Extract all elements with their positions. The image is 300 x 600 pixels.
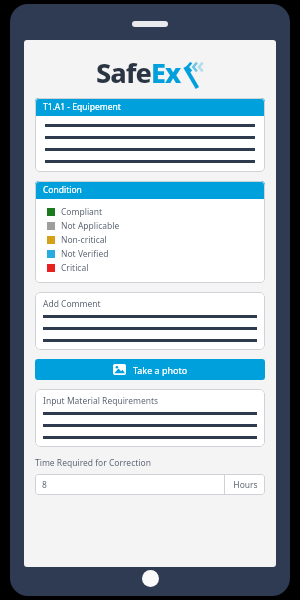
button[interactable]: Non-critical (47, 233, 257, 247)
staticText: Hours (233, 479, 258, 491)
button[interactable]: Home (142, 570, 159, 587)
button[interactable]: Compliant (47, 205, 257, 219)
staticText: Ex (151, 54, 181, 91)
button[interactable]: Not Verified (47, 247, 257, 261)
button[interactable]: Input Material Requirements (35, 389, 265, 447)
staticText: Not Verified (61, 248, 109, 260)
staticText: Time Required for Correction (35, 457, 151, 469)
staticText: 8 (42, 479, 47, 491)
staticText: Compliant (61, 206, 103, 218)
staticText: Not Applicable (61, 220, 120, 232)
button[interactable]: Not Applicable (47, 219, 257, 233)
staticText: Condition (43, 184, 82, 196)
button[interactable]: T1.A1 - Equipement (35, 98, 265, 172)
staticText: Non-critical (61, 234, 107, 246)
button[interactable]: 8 (35, 474, 265, 495)
staticText: T1.A1 - Equipement (43, 101, 121, 113)
staticText: Input Material Requirements (43, 395, 159, 407)
button[interactable]: Add Comment (35, 292, 265, 350)
button[interactable]: Critical (47, 261, 257, 275)
staticText: Critical (61, 262, 89, 274)
staticText: Safe (96, 54, 151, 91)
button[interactable]: Take a photo (35, 359, 265, 380)
staticText: Add Comment (43, 298, 101, 310)
staticText: Take a photo (133, 364, 188, 376)
